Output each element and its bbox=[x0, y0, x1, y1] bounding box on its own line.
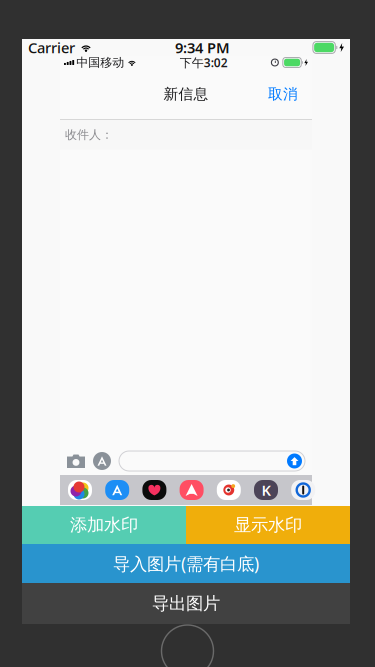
button[interactable]: 导入图片(需有白底) bbox=[22, 544, 350, 583]
button[interactable]: 添加水印 bbox=[22, 506, 186, 544]
staticText: 显示水印 bbox=[234, 514, 302, 536]
staticText: Carrier bbox=[28, 38, 75, 57]
button[interactable]: 显示水印 bbox=[186, 506, 350, 544]
staticText: 9:34 PM bbox=[175, 38, 230, 57]
button[interactable]: 导出图片 bbox=[22, 583, 350, 624]
staticText: 新信息 bbox=[163, 85, 208, 103]
staticText: 导出图片 bbox=[152, 593, 220, 614]
staticText: 取消 bbox=[268, 85, 298, 103]
staticText: 导入图片(需有白底) bbox=[113, 552, 259, 575]
staticText: 下午3:02 bbox=[180, 54, 228, 70]
staticText: 中国移动 bbox=[76, 55, 124, 70]
staticText: K bbox=[261, 480, 270, 500]
button[interactable]: 取消 bbox=[264, 79, 302, 109]
staticText: 添加水印 bbox=[70, 514, 138, 536]
staticText: 收件人： bbox=[65, 127, 113, 142]
